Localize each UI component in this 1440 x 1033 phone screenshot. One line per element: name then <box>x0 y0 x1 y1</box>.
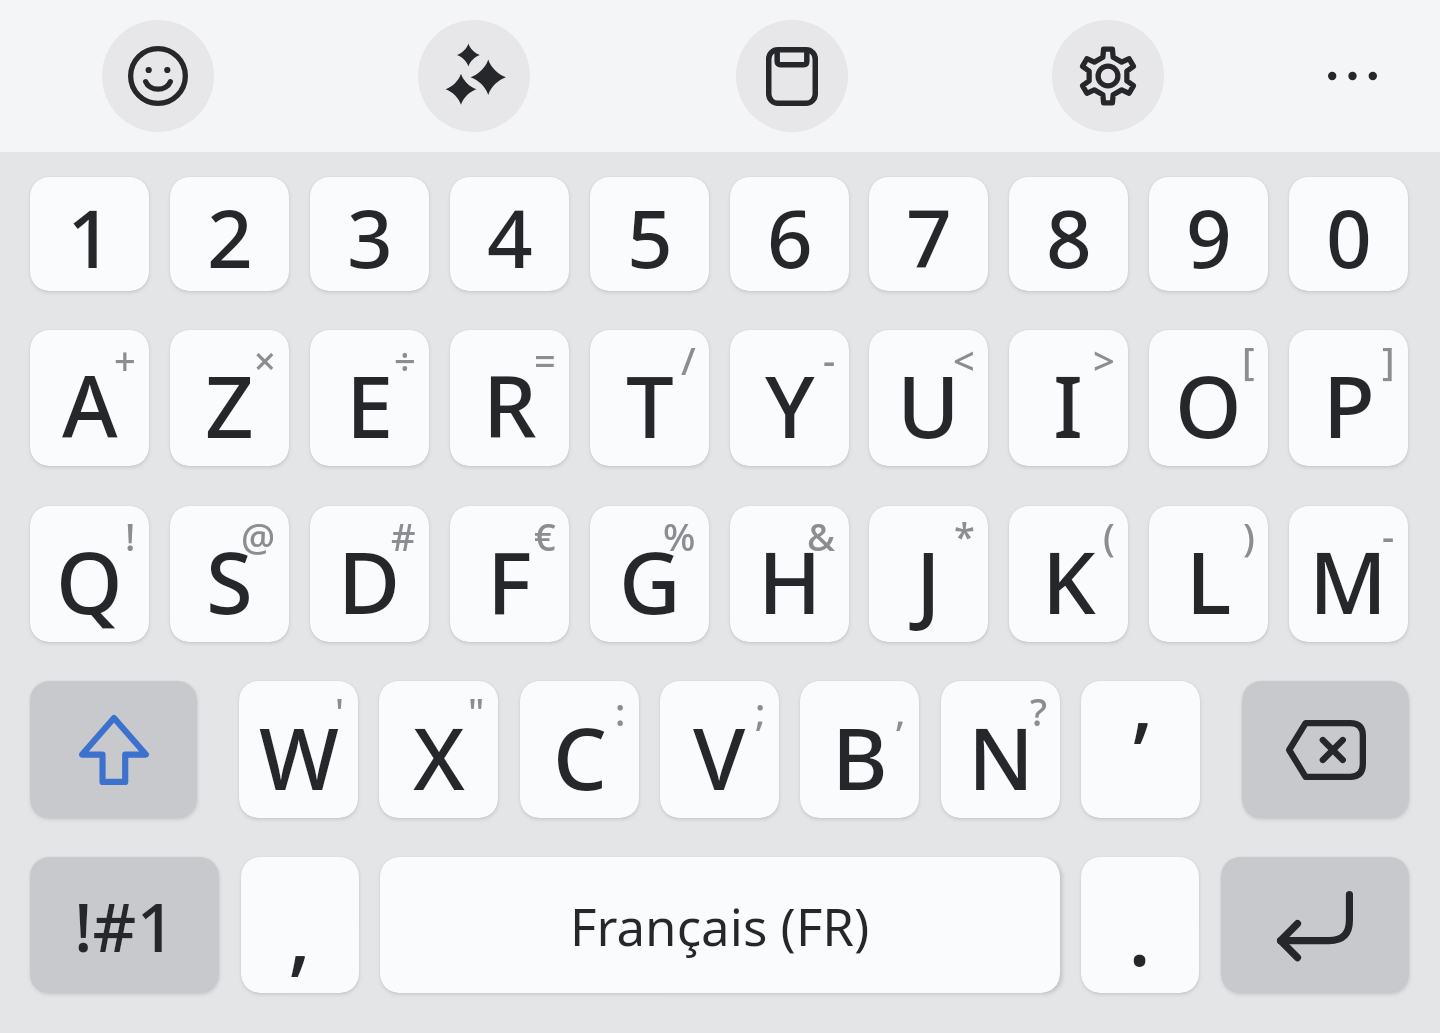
button[interactable]: Français (FR) <box>380 857 1060 993</box>
staticText: O <box>1175 347 1242 463</box>
staticText: 9 <box>1186 182 1232 291</box>
button[interactable]: F <box>450 506 569 642</box>
button[interactable]: O <box>1149 330 1268 466</box>
staticText: + <box>114 334 136 386</box>
staticText: - <box>1382 510 1395 562</box>
staticText: ( <box>1103 510 1115 562</box>
button[interactable]: 3 <box>310 177 429 291</box>
button[interactable]: Y <box>730 330 849 466</box>
button[interactable]: Emoji <box>102 20 214 132</box>
button[interactable]: E <box>310 330 429 466</box>
staticText: % <box>663 510 696 562</box>
button[interactable]: 9 <box>1149 177 1268 291</box>
staticText: 2 <box>207 182 253 291</box>
staticText: @ <box>241 510 276 562</box>
staticText: 5 <box>627 182 673 291</box>
button[interactable]: !#1 <box>30 857 219 993</box>
staticText: ) <box>1243 510 1255 562</box>
staticText: K <box>1042 523 1096 639</box>
staticText: 7 <box>906 182 952 291</box>
button[interactable]: 2 <box>170 177 289 291</box>
button[interactable]: 7 <box>869 177 988 291</box>
staticText: U <box>897 347 960 463</box>
button[interactable]: C <box>520 681 639 818</box>
button[interactable]: X <box>379 681 498 818</box>
button[interactable]: T <box>590 330 709 466</box>
button[interactable]: Z <box>170 330 289 466</box>
button[interactable]: Shift <box>30 681 197 818</box>
button[interactable]: AI suggestions <box>418 20 530 132</box>
staticText: Français (FR) <box>570 891 870 960</box>
staticText: Z <box>205 347 254 463</box>
button[interactable]: L <box>1149 506 1268 642</box>
staticText: N <box>968 699 1034 815</box>
button[interactable]: D <box>310 506 429 642</box>
staticText: / <box>681 334 696 386</box>
button[interactable]: K <box>1009 506 1128 642</box>
staticText: 0 <box>1326 182 1372 291</box>
button[interactable]: N <box>941 681 1060 818</box>
button[interactable]: Enter <box>1221 857 1409 993</box>
button[interactable]: 5 <box>590 177 709 291</box>
staticText: : <box>615 685 626 737</box>
button[interactable]: 0 <box>1289 177 1408 291</box>
staticText: € <box>534 510 556 562</box>
staticText: D <box>338 523 401 639</box>
staticText: W <box>259 699 339 815</box>
staticText: ’ <box>1133 693 1149 809</box>
button[interactable]: . <box>1081 857 1199 993</box>
button[interactable]: R <box>450 330 569 466</box>
button[interactable]: Settings <box>1052 20 1164 132</box>
staticText: ! <box>125 510 136 562</box>
staticText: V <box>693 699 746 815</box>
staticText: > <box>1093 334 1115 386</box>
button[interactable]: 4 <box>450 177 569 291</box>
staticText: ' <box>335 685 345 737</box>
button[interactable]: P <box>1289 330 1408 466</box>
staticText: R <box>483 347 537 463</box>
button[interactable]: A <box>30 330 149 466</box>
staticText: × <box>254 334 276 386</box>
staticText: , <box>895 685 906 737</box>
button[interactable]: Backspace <box>1242 681 1409 818</box>
button[interactable]: More options <box>1296 20 1408 132</box>
staticText: X <box>413 699 465 815</box>
button[interactable]: 1 <box>30 177 149 291</box>
staticText: ? <box>1030 685 1047 737</box>
staticText: L <box>1186 523 1232 639</box>
staticText: 6 <box>767 182 813 291</box>
staticText: F <box>487 523 532 639</box>
staticText: M <box>1309 523 1388 639</box>
button[interactable]: M <box>1289 506 1408 642</box>
button[interactable]: U <box>869 330 988 466</box>
staticText: ; <box>755 685 766 737</box>
button[interactable]: B <box>800 681 919 818</box>
staticText: G <box>619 523 681 639</box>
staticText: " <box>468 685 485 737</box>
button[interactable]: V <box>660 681 779 818</box>
staticText: J <box>916 523 941 639</box>
button[interactable]: J <box>869 506 988 642</box>
staticText: H <box>758 523 822 639</box>
staticText: < <box>953 334 975 386</box>
staticText: Y <box>765 347 815 463</box>
button[interactable]: W <box>239 681 358 818</box>
staticText: - <box>823 334 836 386</box>
staticText: & <box>807 510 836 562</box>
button[interactable]: G <box>590 506 709 642</box>
staticText: ÷ <box>394 334 416 386</box>
staticText: C <box>553 699 607 815</box>
button[interactable]: 6 <box>730 177 849 291</box>
staticText: . <box>1128 875 1152 991</box>
staticText: ] <box>1382 334 1395 386</box>
staticText: I <box>1053 347 1084 463</box>
button[interactable]: Clipboard <box>736 20 848 132</box>
button[interactable]: , <box>241 857 359 993</box>
staticText: 8 <box>1046 182 1092 291</box>
button[interactable]: S <box>170 506 289 642</box>
button[interactable]: 8 <box>1009 177 1128 291</box>
button[interactable]: Q <box>30 506 149 642</box>
button[interactable]: I <box>1009 330 1128 466</box>
button[interactable]: H <box>730 506 849 642</box>
button[interactable]: ’ <box>1081 681 1200 818</box>
